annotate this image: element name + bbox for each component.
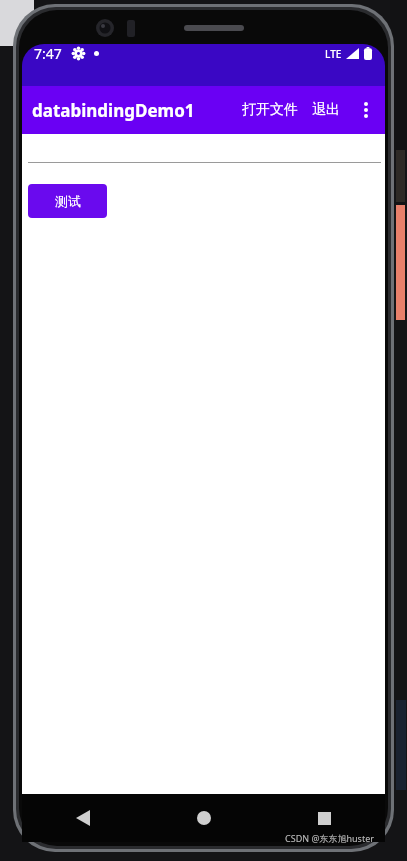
button[interactable]: 退出	[305, 89, 347, 131]
button[interactable]: Home	[143, 794, 264, 842]
staticText: LTE	[325, 47, 342, 61]
staticText: CSDN @东东旭huster	[285, 832, 374, 844]
button[interactable]: 打开文件	[235, 89, 305, 131]
button[interactable]: Back	[22, 794, 143, 842]
staticText: databindingDemo1	[32, 99, 195, 122]
button[interactable]: 测试	[28, 184, 107, 218]
staticText: 退出	[312, 101, 340, 119]
staticText: 测试	[55, 193, 81, 209]
button[interactable]: More options	[347, 91, 385, 129]
button[interactable]: Recent apps	[264, 794, 385, 842]
staticText: 7:47	[34, 44, 62, 63]
staticText: 打开文件	[242, 101, 298, 119]
